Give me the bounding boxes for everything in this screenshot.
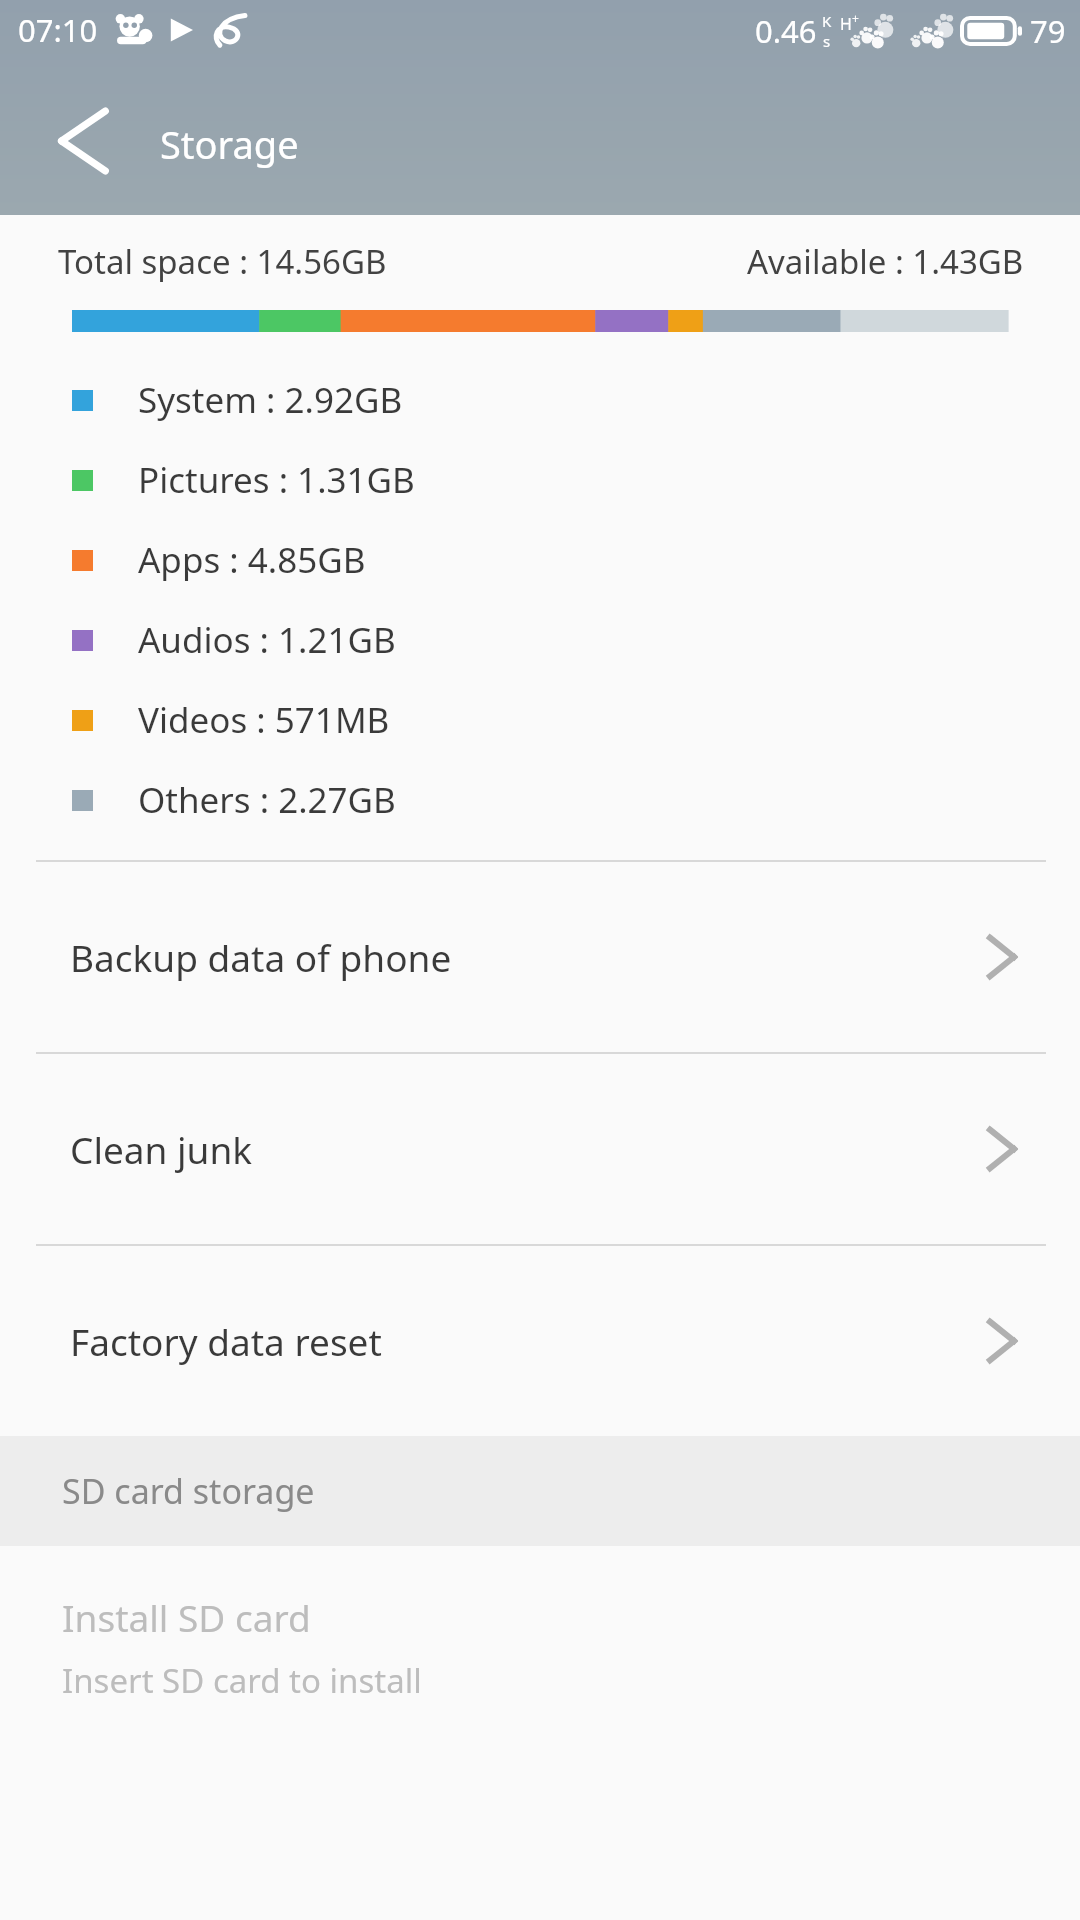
staticText: Backup data of phone (70, 932, 452, 982)
staticText: Videos : 571MB (138, 696, 390, 744)
staticText: Total space : 14.56GB (58, 239, 387, 284)
button[interactable]: Clean junk (0, 1054, 1080, 1244)
staticText: 0.46 (755, 10, 817, 52)
staticText: Storage (160, 118, 299, 170)
staticText: Audios : 1.21GB (138, 616, 396, 664)
staticText: + (852, 10, 859, 26)
staticText: Factory data reset (70, 1316, 382, 1366)
staticText: 79 (1030, 10, 1066, 52)
staticText: System : 2.92GB (138, 376, 403, 424)
staticText: 07:10 (18, 9, 98, 51)
staticText: K (822, 11, 832, 31)
staticText: SD card storage (62, 1468, 315, 1514)
staticText: Insert SD card to install (62, 1658, 422, 1703)
staticText: Install SD card (62, 1592, 311, 1642)
button[interactable]: Factory data reset (0, 1246, 1080, 1436)
button[interactable]: Back (42, 104, 116, 178)
button[interactable]: Backup data of phone (0, 862, 1080, 1052)
staticText: H (840, 13, 852, 35)
staticText: Clean junk (70, 1124, 253, 1174)
staticText: Others : 2.27GB (138, 776, 396, 824)
button[interactable]: Install SD card (0, 1546, 1080, 1703)
staticText: Available : 1.43GB (747, 239, 1024, 284)
staticText: Pictures : 1.31GB (138, 456, 415, 504)
staticText: s (823, 31, 831, 51)
staticText: Apps : 4.85GB (138, 536, 366, 584)
